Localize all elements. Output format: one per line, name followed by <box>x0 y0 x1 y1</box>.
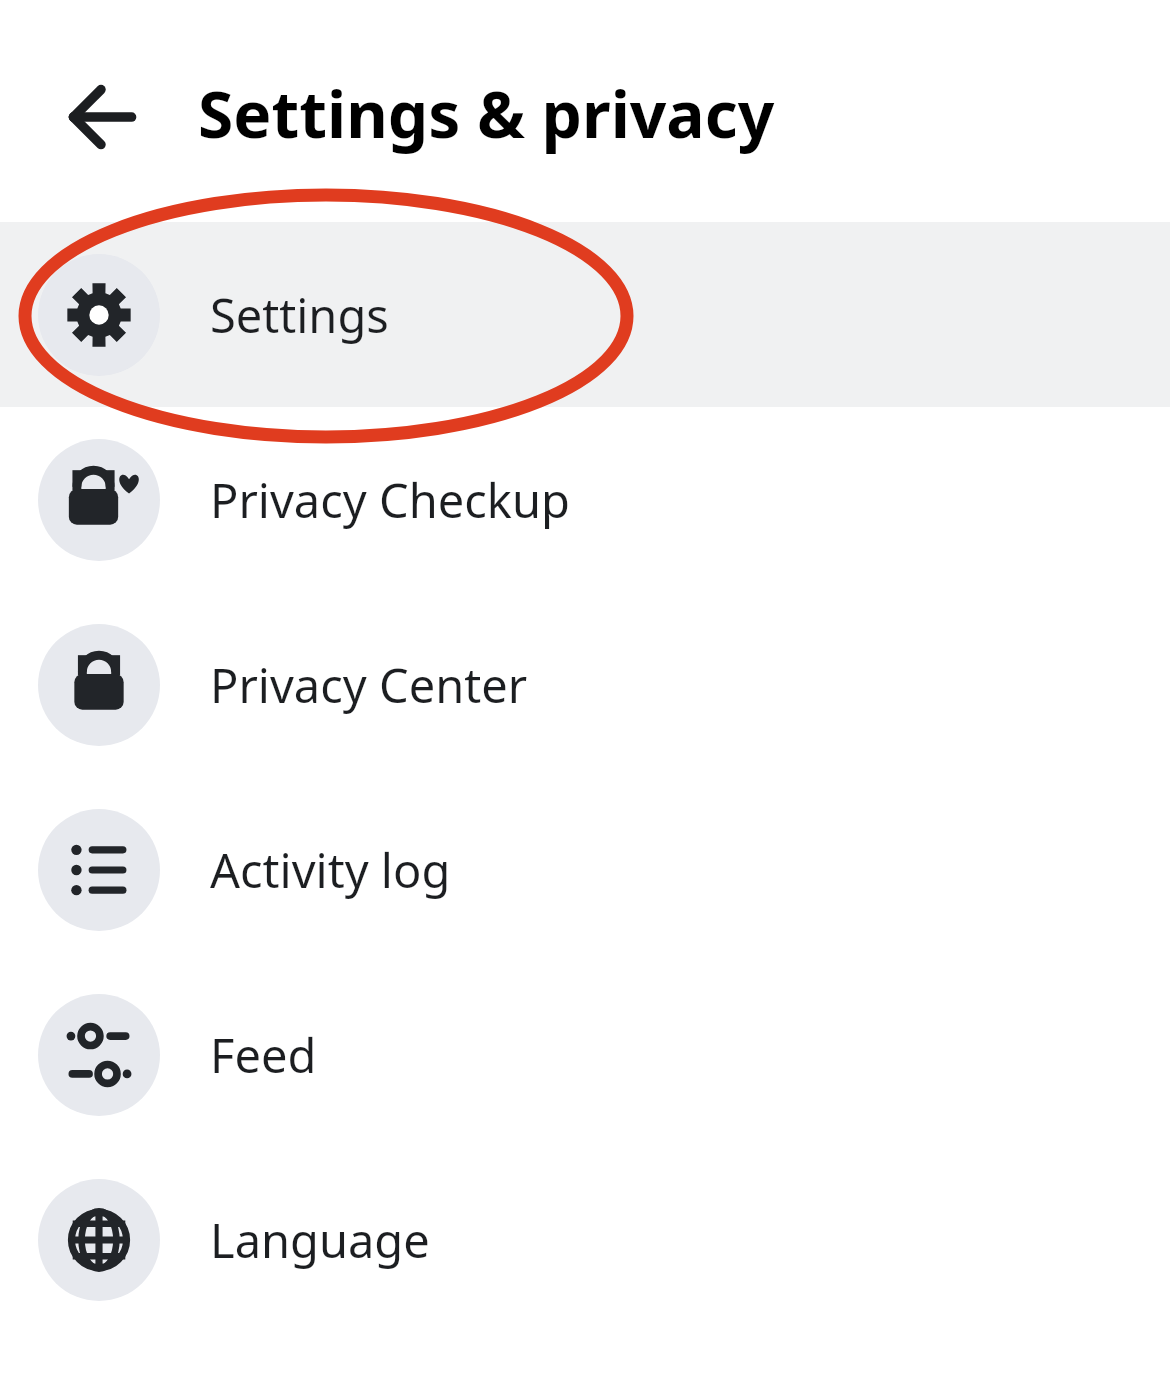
staticText: Settings & privacy <box>198 70 775 157</box>
button[interactable]: Privacy Checkup <box>0 407 1170 592</box>
button[interactable]: Privacy Center <box>0 592 1170 777</box>
staticText: Activity log <box>210 838 451 902</box>
button[interactable]: Language <box>0 1147 1170 1332</box>
staticText: Settings <box>210 283 389 347</box>
button[interactable]: Feed <box>0 962 1170 1147</box>
staticText: Feed <box>210 1023 317 1087</box>
button[interactable]: Back <box>50 72 152 164</box>
button[interactable]: Activity log <box>0 777 1170 962</box>
button[interactable]: Settings <box>0 222 1170 407</box>
staticText: Language <box>210 1208 430 1272</box>
staticText: Privacy Center <box>210 653 528 717</box>
staticText: Privacy Checkup <box>210 468 570 532</box>
